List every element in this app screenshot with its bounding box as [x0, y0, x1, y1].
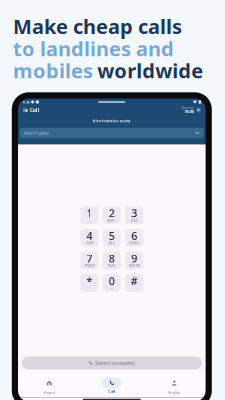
staticText: 4	[86, 229, 92, 243]
staticText: ABC	[107, 217, 116, 223]
button[interactable]: 6	[125, 229, 143, 247]
staticText: 7	[86, 251, 92, 265]
button[interactable]: 0	[103, 274, 121, 292]
staticText: Select a country	[95, 359, 135, 366]
button[interactable]: Select Country	[20, 128, 204, 138]
staticText: 3	[131, 206, 137, 220]
staticText: *	[86, 274, 92, 288]
staticText: TUV	[108, 263, 116, 268]
button[interactable]: 8	[103, 251, 121, 269]
staticText: Profile	[168, 390, 180, 395]
button[interactable]: 3	[125, 206, 143, 224]
staticText: Balance	[182, 106, 194, 110]
staticText: Make cheap calls	[13, 13, 182, 40]
button[interactable]: Select a country	[22, 356, 202, 369]
staticText: Call	[30, 106, 40, 114]
button[interactable]: 5	[103, 229, 121, 247]
staticText: 5	[109, 229, 115, 243]
button[interactable]: 9	[125, 251, 143, 269]
staticText: to landlines and	[13, 35, 174, 62]
button[interactable]: Profile	[143, 373, 206, 397]
staticText: $0.00	[185, 109, 194, 114]
staticText: 0	[109, 274, 115, 288]
button[interactable]: Call	[80, 373, 143, 397]
staticText: GHI	[86, 240, 93, 245]
staticText: Select destination country	[93, 119, 131, 123]
staticText: mobiles	[13, 57, 93, 84]
staticText: DEF	[131, 217, 138, 223]
button[interactable]: Home	[18, 373, 80, 397]
button[interactable]: *	[80, 274, 99, 292]
staticText: JKL	[109, 240, 115, 245]
button[interactable]: 4	[80, 229, 99, 247]
staticText: 9	[131, 251, 137, 265]
button[interactable]: 1	[80, 206, 99, 224]
staticText: PQRS	[84, 263, 94, 268]
staticText: 6	[131, 229, 137, 243]
staticText: 8	[109, 251, 115, 265]
staticText: WXYZ	[129, 263, 140, 268]
button[interactable]: 7	[80, 251, 99, 269]
staticText: worldwide	[97, 57, 203, 84]
staticText: 1	[86, 206, 92, 220]
staticText: MNO	[129, 240, 139, 245]
staticText: Select Country	[24, 130, 49, 136]
button[interactable]: #	[125, 274, 143, 292]
staticText: 2	[109, 206, 115, 220]
staticText: #	[131, 274, 138, 288]
staticText: 4:38	[22, 99, 29, 105]
button[interactable]: Add balance	[196, 107, 201, 113]
staticText: Home	[44, 390, 55, 395]
staticText: +	[111, 285, 113, 291]
button[interactable]: 2	[103, 206, 121, 224]
staticText: Call	[108, 388, 115, 394]
